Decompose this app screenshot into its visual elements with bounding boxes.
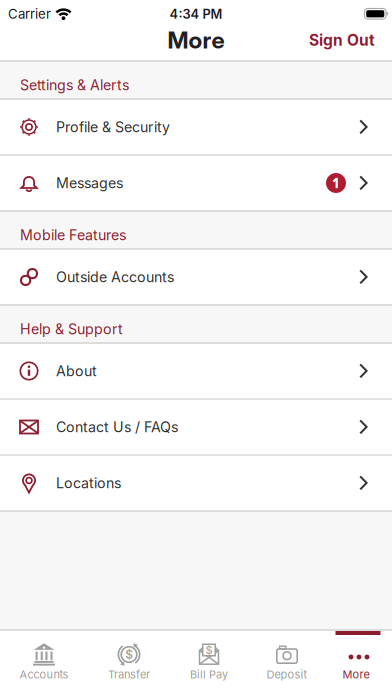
staticText: Carrier [8,6,51,22]
staticText: $ [205,643,212,656]
staticText: Sign Out [309,31,375,49]
staticText: 4:34 PM [169,6,222,21]
button[interactable]: $ [170,631,248,696]
staticText: About [56,363,97,379]
staticText: Help & Support [20,321,123,337]
staticText: Locations [56,475,121,491]
button[interactable]: Profile & Security [0,100,392,154]
staticText: More [167,26,224,54]
button[interactable]: Outside Accounts [0,250,392,304]
staticText: Bill Pay [190,668,228,681]
button[interactable]: More [323,631,389,696]
button[interactable]: Accounts [0,631,88,696]
staticText: Messages [56,175,123,191]
button[interactable]: Contact Us / FAQs [0,400,392,454]
button[interactable]: Messages [0,156,392,210]
staticText: Deposit [266,668,307,681]
staticText: More [342,668,369,681]
button[interactable]: Deposit [248,631,326,696]
button[interactable]: Locations [0,456,392,510]
staticText: $ [125,647,133,661]
staticText: Outside Accounts [56,269,174,285]
staticText: Accounts [19,668,68,681]
button[interactable]: Sign Out [309,31,375,49]
button[interactable]: About [0,344,392,398]
staticText: Settings & Alerts [20,77,129,93]
staticText: Profile & Security [56,119,170,135]
staticText: Contact Us / FAQs [56,419,178,435]
staticText: Transfer [108,668,150,681]
button[interactable]: $ [88,631,170,696]
staticText: Mobile Features [20,227,126,243]
